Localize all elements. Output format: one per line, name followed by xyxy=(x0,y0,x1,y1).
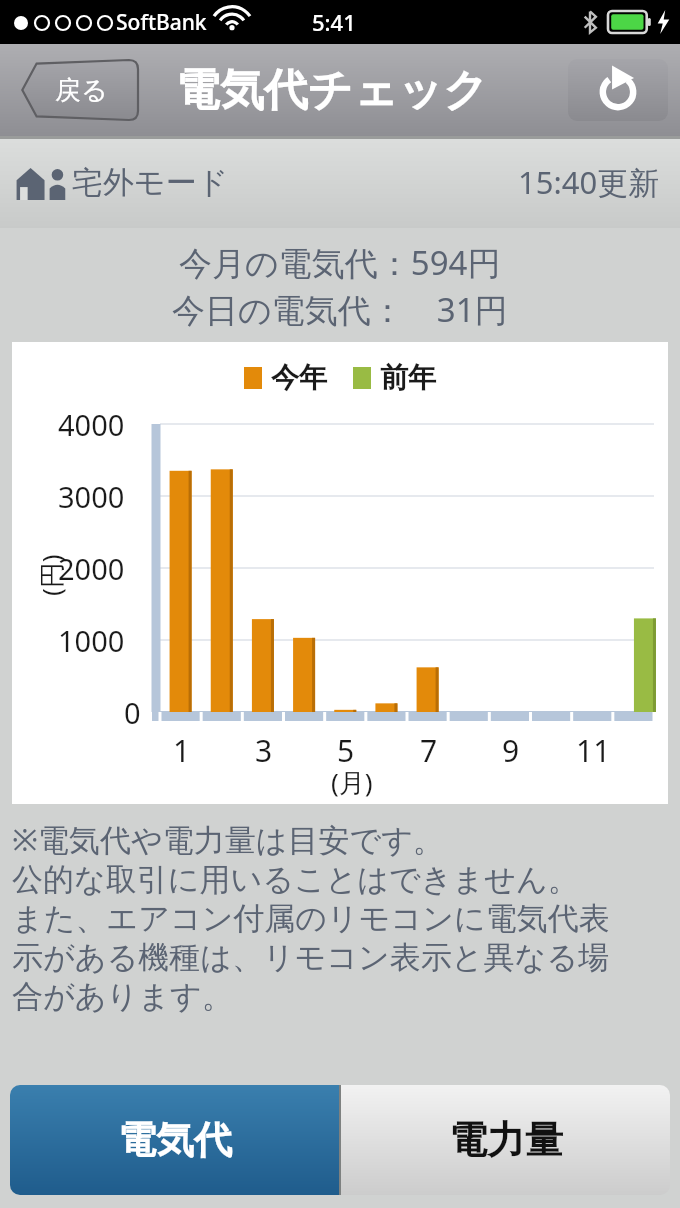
staticText: 公的な取引に用いることはできません。 xyxy=(12,860,579,899)
staticText: 合があります。 xyxy=(12,977,233,1016)
staticText: 電力量 xyxy=(449,1116,563,1164)
staticText: (月) xyxy=(331,764,373,800)
button[interactable]: 更新 xyxy=(568,59,668,121)
staticText: 前年 xyxy=(380,360,436,395)
staticText: また、エアコン付属のリモコンに電気代表 xyxy=(12,899,610,938)
staticText: 今年 xyxy=(271,360,327,395)
staticText: 今月の電気代：594円 xyxy=(179,240,501,285)
staticText: ※電気代や電力量は目安です。 xyxy=(12,818,444,860)
staticText: 今日の電気代： 31円 xyxy=(172,287,508,332)
staticText: 5 xyxy=(337,730,355,771)
button[interactable]: 戻る xyxy=(8,60,138,120)
staticText: (円) xyxy=(33,554,69,596)
staticText: 0 xyxy=(124,693,141,732)
staticText: 1 xyxy=(173,730,191,771)
staticText: 宅外モード xyxy=(72,163,229,202)
staticText: 4000 xyxy=(58,405,125,444)
staticText: 15:40更新 xyxy=(518,161,660,203)
button[interactable]: 電気代 xyxy=(10,1085,339,1195)
staticText: 示がある機種は、リモコン表示と異なる場 xyxy=(12,938,609,977)
staticText: 電気代 xyxy=(118,1116,232,1164)
staticText: 11 xyxy=(576,730,611,771)
staticText: 電気代チェック xyxy=(176,63,489,118)
staticText: 3 xyxy=(255,730,273,771)
staticText: 7 xyxy=(420,730,438,771)
staticText: 2000 xyxy=(58,549,125,588)
staticText: 9 xyxy=(502,730,520,771)
button[interactable]: 電力量 xyxy=(341,1085,670,1195)
staticText: 1000 xyxy=(58,621,125,660)
staticText: 5:41 xyxy=(312,7,356,37)
staticText: 戻る xyxy=(55,74,108,107)
staticText: 3000 xyxy=(58,477,125,516)
staticText: SoftBank xyxy=(116,8,207,37)
